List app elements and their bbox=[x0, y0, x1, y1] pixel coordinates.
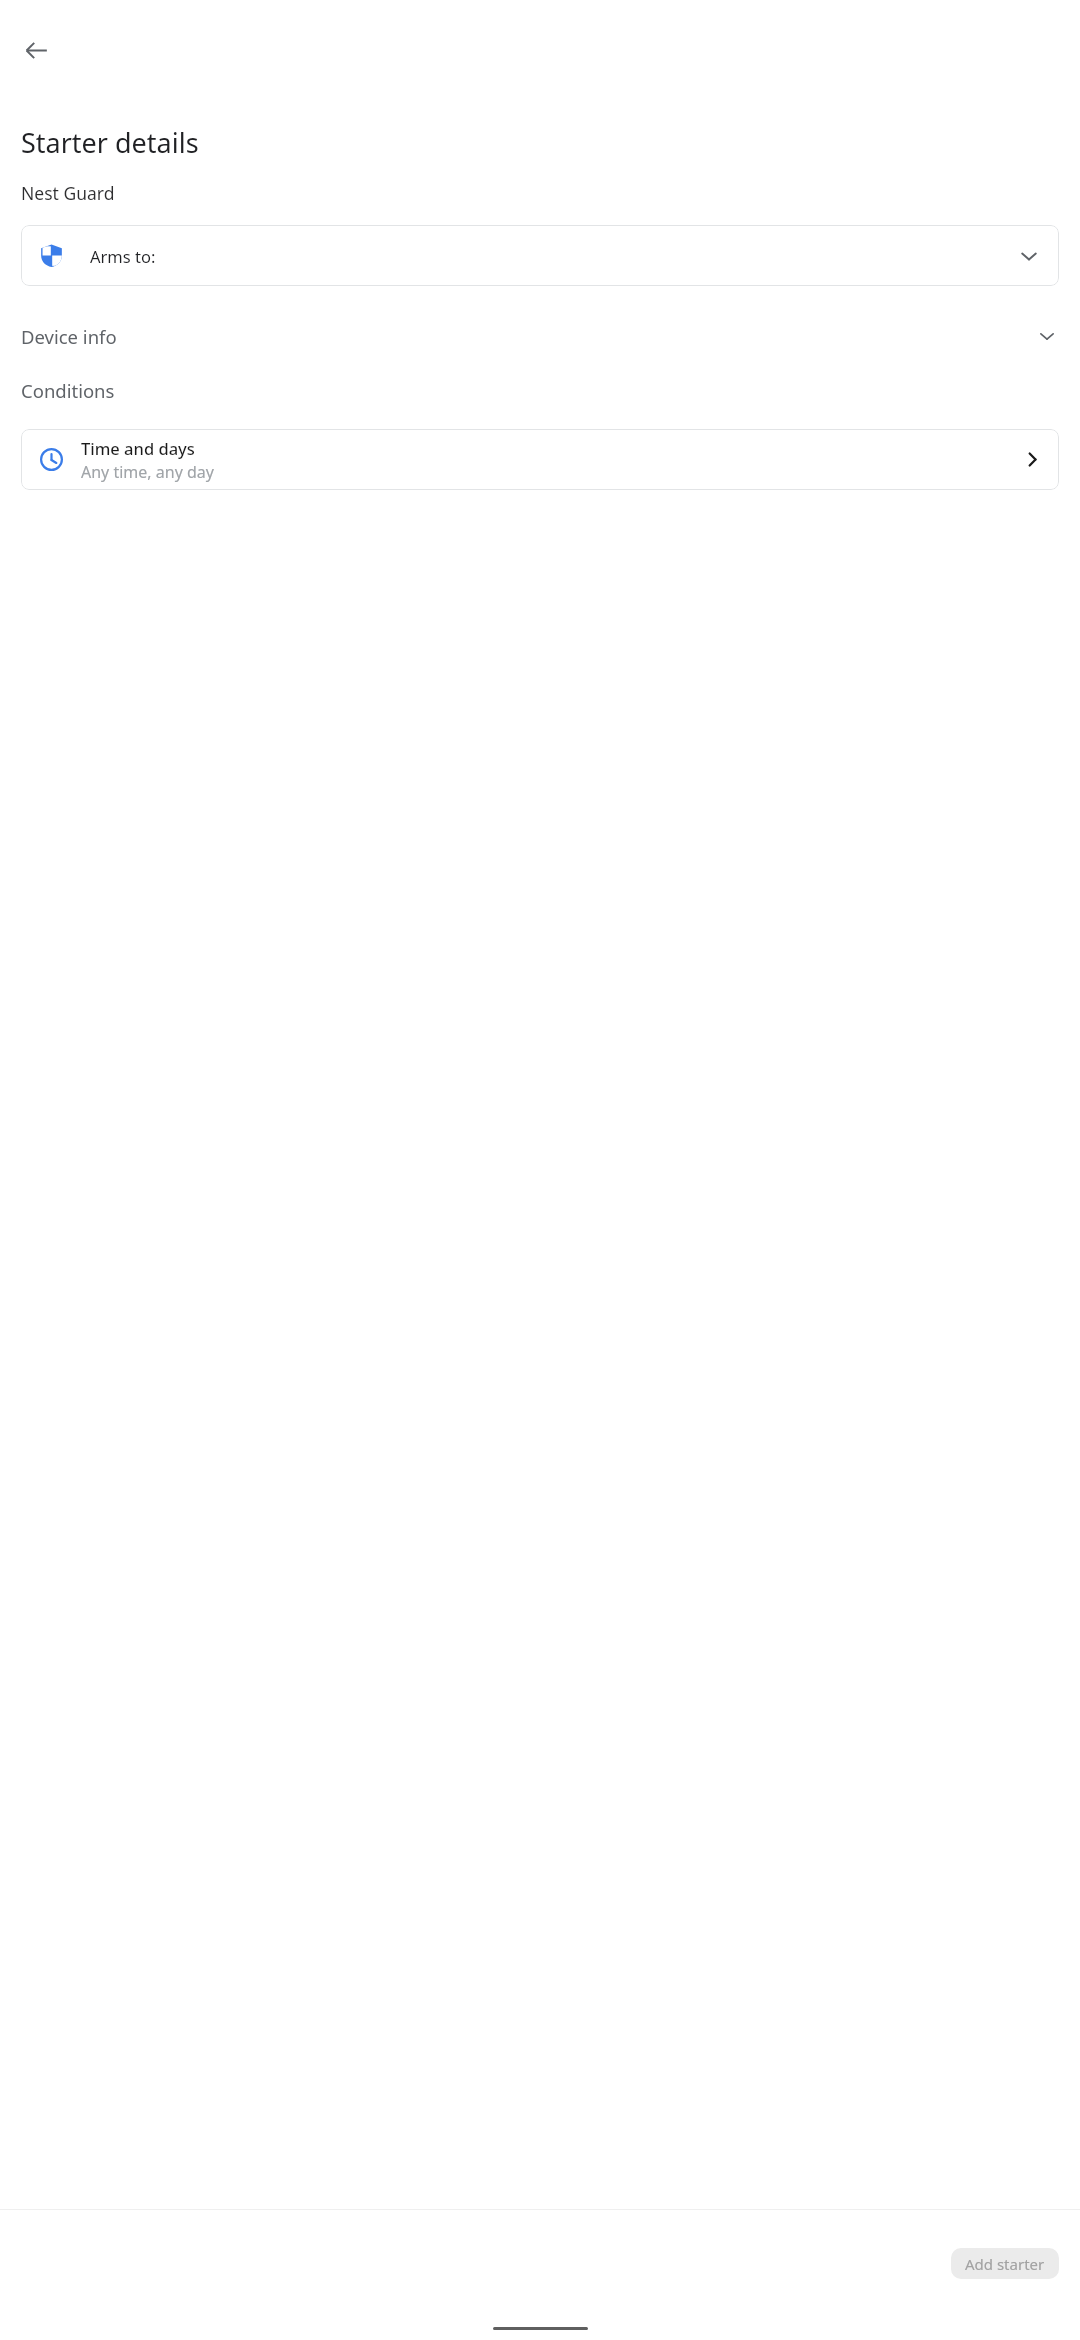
staticText: Conditions bbox=[21, 378, 115, 403]
staticText: Add starter bbox=[965, 2254, 1045, 2274]
button[interactable]: Add starter bbox=[951, 2248, 1059, 2279]
staticText: Device info bbox=[21, 324, 117, 349]
button[interactable]: Device info bbox=[0, 312, 1080, 360]
button[interactable]: Arms to: bbox=[21, 225, 1059, 286]
staticText: Starter details bbox=[21, 124, 199, 161]
button[interactable]: Back bbox=[12, 26, 60, 74]
staticText: Nest Guard bbox=[21, 181, 115, 205]
button[interactable]: Time and days bbox=[21, 429, 1059, 490]
staticText: Arms to: bbox=[90, 245, 156, 267]
staticText: Any time, any day bbox=[81, 461, 214, 483]
staticText: Time and days bbox=[81, 437, 195, 459]
